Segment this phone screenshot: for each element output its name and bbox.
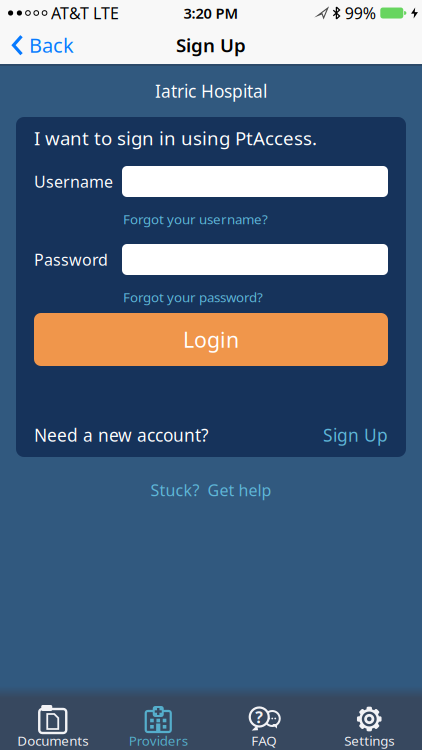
staticText: Login	[183, 325, 239, 354]
staticText: FAQ	[251, 732, 276, 749]
staticText: Need a new account?	[34, 423, 209, 446]
staticText: 3:20 PM	[183, 3, 238, 23]
button[interactable]: Providers	[105, 698, 211, 750]
button[interactable]: Back	[0, 26, 110, 64]
button[interactable]: Documents	[0, 698, 105, 750]
staticText: Iatric Hospital	[155, 79, 267, 102]
button[interactable]: Sign Up	[323, 423, 388, 446]
staticText: Forgot your password?	[123, 288, 263, 306]
staticText: Documents	[17, 732, 88, 749]
button[interactable]: Forgot your password?	[123, 288, 263, 306]
staticText: Sign Up	[323, 423, 388, 446]
staticText: Back	[29, 32, 74, 58]
staticText: Stuck? Get help	[150, 479, 271, 501]
staticText: AT&T	[51, 2, 89, 24]
staticText: Username	[34, 171, 113, 192]
staticText: Settings	[344, 732, 394, 749]
staticText: 99%	[345, 2, 376, 24]
button[interactable]: Forgot your username?	[123, 210, 268, 228]
button[interactable]: Login	[34, 313, 388, 366]
staticText: Password	[34, 249, 108, 270]
staticText: ?	[255, 706, 263, 728]
staticText: Providers	[129, 732, 188, 749]
button[interactable]: ?	[211, 698, 316, 750]
button[interactable]: Settings	[316, 698, 422, 750]
staticText: Forgot your username?	[123, 210, 268, 228]
staticText: Sign Up	[176, 33, 246, 57]
button[interactable]: Stuck? Get help	[150, 479, 271, 501]
staticText: I want to sign in using PtAccess.	[34, 126, 317, 150]
staticText: LTE	[93, 2, 119, 24]
